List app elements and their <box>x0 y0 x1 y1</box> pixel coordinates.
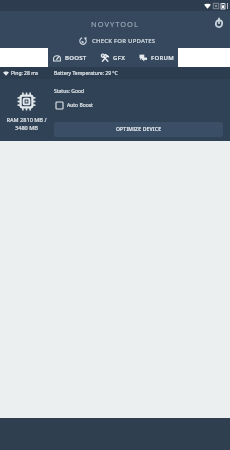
staticText: BOOST <box>65 54 87 62</box>
button[interactable]: CHECK FOR UPDATES <box>0 34 230 48</box>
button[interactable]: OPTIMIZE DEVICE <box>54 122 223 137</box>
button[interactable]: Auto Boost <box>54 102 93 109</box>
staticText: Auto Boost <box>67 102 93 109</box>
staticText: OPTIMIZE DEVICE <box>116 126 162 133</box>
staticText: RAM 2810 MB / 3480 MB <box>6 116 47 132</box>
staticText: CHECK FOR UPDATES <box>92 37 156 45</box>
staticText: NOVYTOOL <box>91 19 139 29</box>
staticText: FORUM <box>151 54 175 62</box>
button[interactable]: GFX <box>101 48 126 67</box>
button[interactable]: FORUM <box>139 48 175 67</box>
staticText: Battery Temperature: 29 °C <box>54 70 118 77</box>
button[interactable]: Power <box>208 12 230 34</box>
staticText: GFX <box>113 54 126 62</box>
button[interactable]: BOOST <box>53 48 88 67</box>
staticText: Ping: 28 ms <box>11 70 39 77</box>
staticText: Status: Good <box>54 88 85 95</box>
